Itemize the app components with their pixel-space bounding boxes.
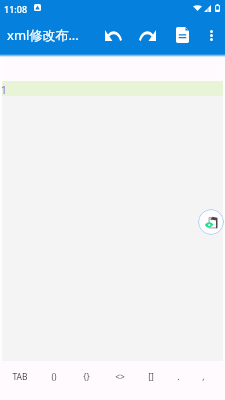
staticText: TAB	[12, 371, 28, 383]
staticText: ,	[202, 371, 205, 383]
button[interactable]: Redo	[131, 19, 164, 52]
staticText: []	[148, 371, 154, 383]
staticText: xml修改布...	[7, 26, 79, 44]
staticText: .	[177, 371, 180, 383]
staticText: <>	[115, 371, 125, 383]
button[interactable]: Undo	[97, 19, 130, 52]
button[interactable]: []	[136, 357, 166, 396]
staticText: ()	[51, 371, 57, 383]
button[interactable]: Open file	[166, 18, 199, 51]
button[interactable]: More options	[198, 22, 225, 49]
staticText: 11:08	[4, 3, 28, 15]
button[interactable]: Preview layout	[198, 209, 224, 235]
staticText: 1	[1, 83, 7, 97]
button[interactable]: TAB	[5, 357, 35, 396]
button[interactable]: ,	[188, 357, 218, 396]
button[interactable]: .	[163, 357, 193, 396]
button[interactable]: ()	[39, 357, 69, 396]
button[interactable]: <>	[105, 357, 135, 396]
staticText: {}	[83, 371, 90, 383]
button[interactable]: {}	[71, 357, 101, 396]
